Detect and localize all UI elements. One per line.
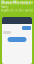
staticText: Chat with friends and family anywhere in…: [1, 2, 33, 12]
staticText: Share Moments: [1, 0, 33, 5]
